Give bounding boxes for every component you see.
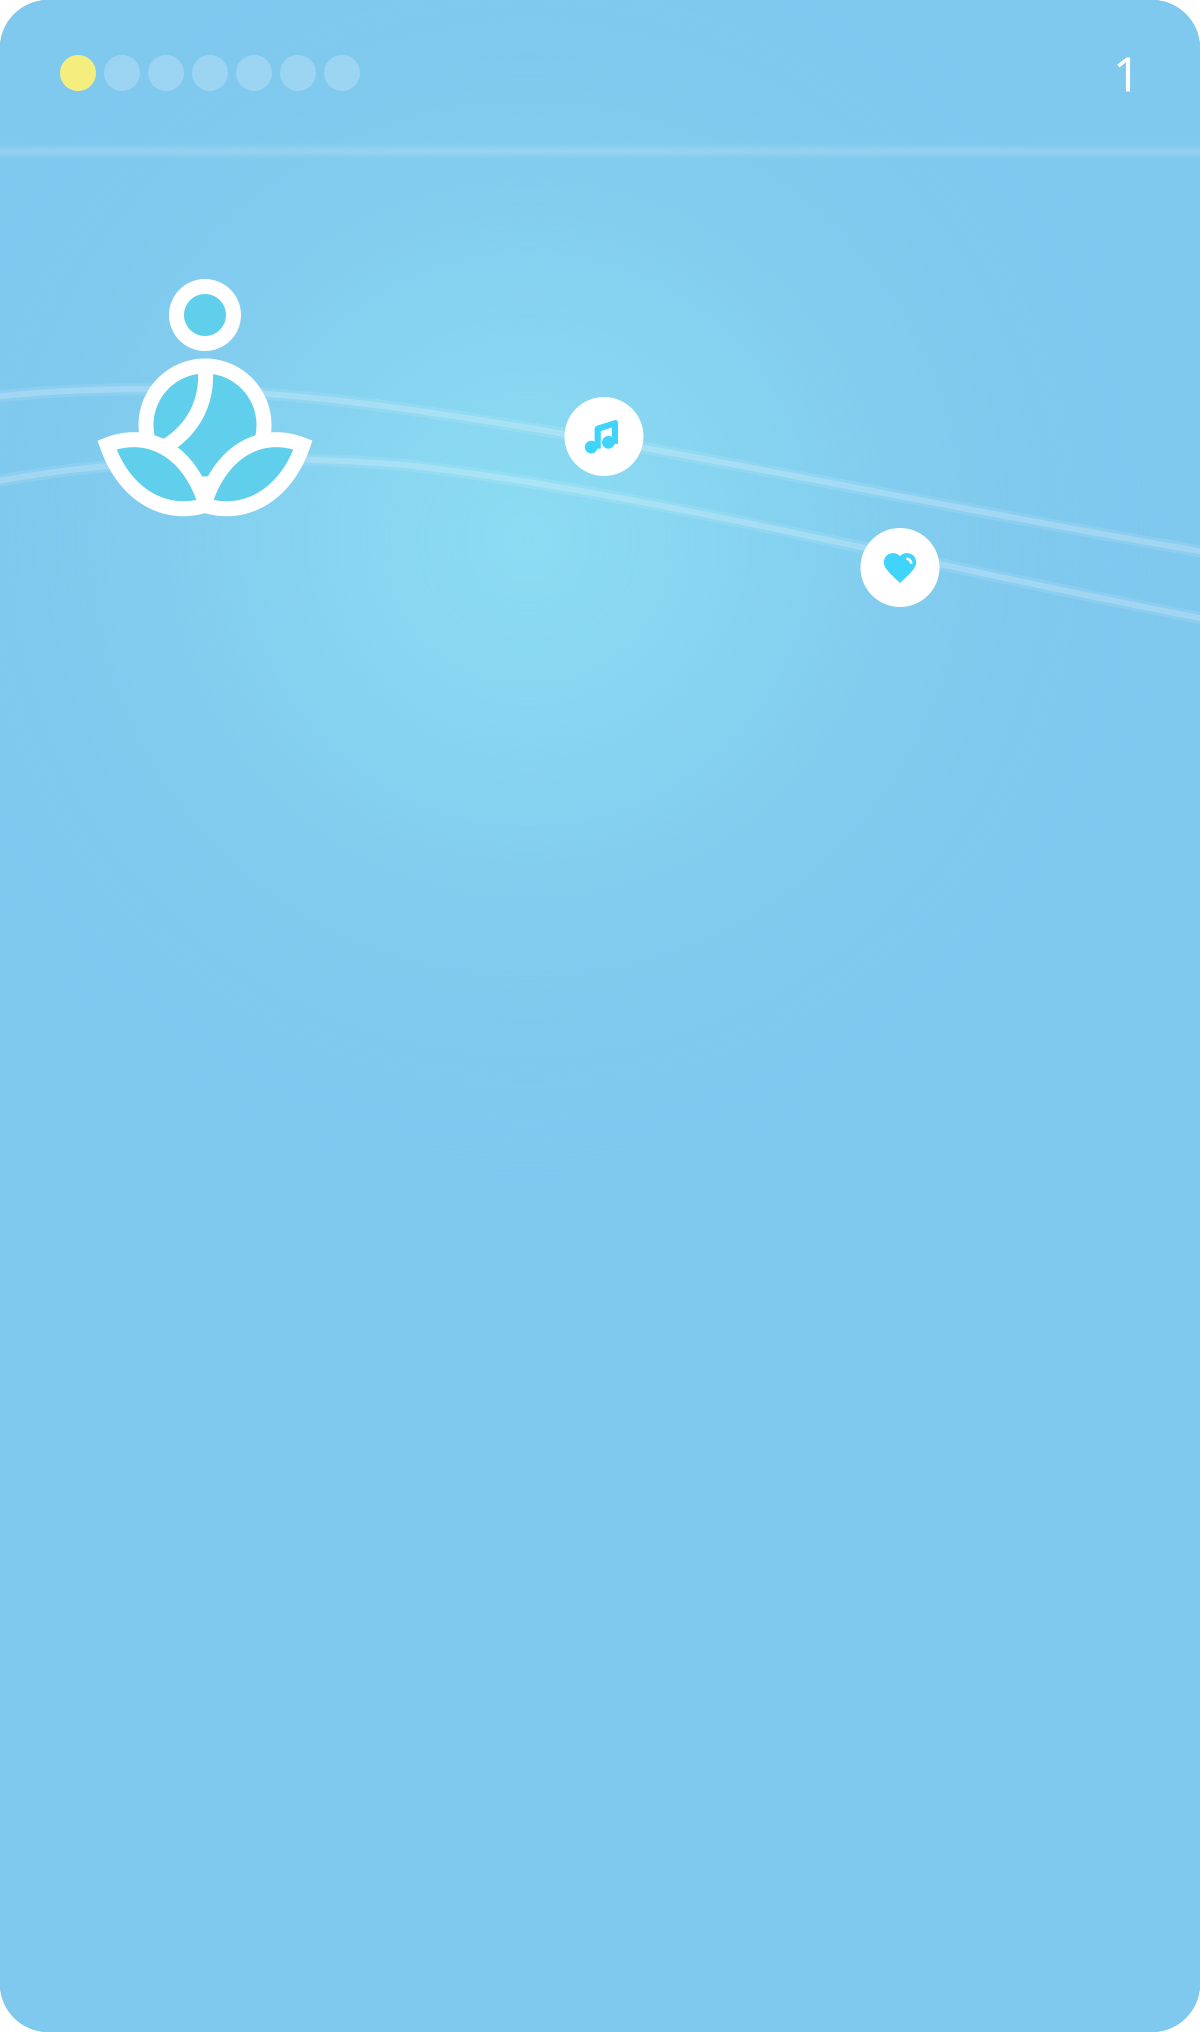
button[interactable]: Meditate — [95, 269, 325, 519]
button[interactable]: Step 2 — [104, 55, 140, 91]
button[interactable]: Step 4 — [192, 55, 228, 91]
button[interactable]: Step 6 — [280, 55, 316, 91]
button[interactable]: 1 — [1113, 41, 1140, 105]
button[interactable]: Step 3 — [148, 55, 184, 91]
button[interactable]: Step 5 — [236, 55, 272, 91]
button[interactable]: Step 1 — [60, 55, 96, 91]
staticText: 1 — [1113, 41, 1140, 105]
button[interactable]: Favourites — [860, 528, 939, 607]
button[interactable]: Step 7 — [324, 55, 360, 91]
button[interactable]: Music — [564, 397, 643, 476]
